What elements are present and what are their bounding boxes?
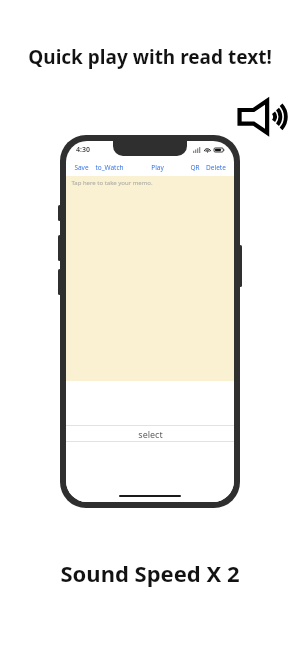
- staticText: Sound Speed X 2: [60, 558, 240, 588]
- staticText: Save: [74, 163, 89, 172]
- button[interactable]: Delete: [205, 162, 227, 173]
- button[interactable]: select: [66, 425, 234, 442]
- staticText: QR: [190, 163, 200, 172]
- staticText: to_Watch: [95, 163, 124, 172]
- button[interactable]: Save: [73, 162, 90, 173]
- staticText: Play: [151, 163, 164, 172]
- button[interactable]: to_Watch: [94, 162, 125, 173]
- button[interactable]: QR: [189, 162, 201, 173]
- staticText: Quick play with read text!: [28, 44, 272, 70]
- staticText: select: [138, 428, 163, 440]
- staticText: Delete: [206, 163, 226, 172]
- staticText: Tap here to take your memo.: [71, 179, 153, 187]
- staticText: 4:30: [76, 145, 90, 155]
- button[interactable]: Sound on: [238, 96, 290, 136]
- button[interactable]: Play: [150, 162, 165, 173]
- button[interactable]: Tap here to take your memo.: [66, 176, 234, 381]
